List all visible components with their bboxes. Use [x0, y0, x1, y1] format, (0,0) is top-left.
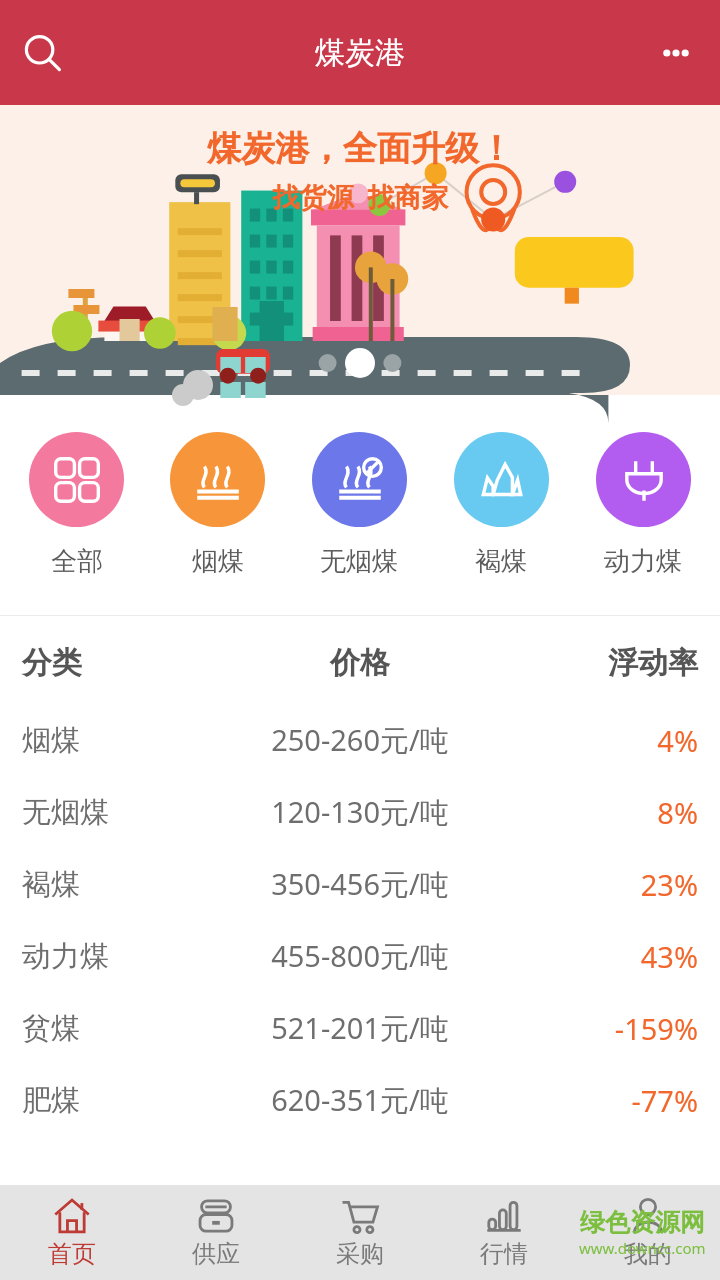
staticText: 肥煤	[22, 1082, 210, 1119]
staticText: 煤炭港	[315, 34, 405, 72]
staticText: 250-260元/吨	[210, 720, 510, 760]
button[interactable]: 贫煤	[22, 992, 698, 1064]
staticText: 褐煤	[475, 545, 527, 578]
staticText: 动力煤	[22, 938, 210, 975]
staticText: 521-201元/吨	[210, 1008, 510, 1048]
button[interactable]: 全部	[6, 395, 147, 615]
button[interactable]: 行情	[432, 1185, 576, 1280]
button[interactable]: 烟煤	[147, 395, 288, 615]
staticText: 120-130元/吨	[210, 792, 510, 832]
staticText: 供应	[192, 1239, 240, 1269]
staticText: 350-456元/吨	[210, 864, 510, 904]
button[interactable]: 我的	[576, 1185, 720, 1280]
staticText: 620-351元/吨	[210, 1080, 510, 1120]
staticText: 首页	[48, 1239, 96, 1269]
staticText: 浮动率	[510, 644, 698, 682]
staticText: 烟煤	[22, 722, 210, 759]
staticText: 绿色资源网	[580, 1207, 705, 1238]
button[interactable]: 无烟煤	[288, 395, 430, 615]
staticText: www.downcc.com	[579, 1238, 706, 1258]
staticText: 分类	[22, 644, 210, 682]
button[interactable]: More options	[644, 21, 708, 85]
button[interactable]: 褐煤	[430, 395, 572, 615]
staticText: 褐煤	[22, 866, 210, 903]
staticText: -159%	[510, 1009, 698, 1048]
staticText: 23%	[510, 865, 698, 904]
button[interactable]: 烟煤	[22, 704, 698, 776]
staticText: 找货源 找商家	[272, 178, 449, 215]
staticText: 4%	[510, 721, 698, 760]
button[interactable]: 供应	[144, 1185, 288, 1280]
staticText: 贫煤	[22, 1010, 210, 1047]
staticText: -77%	[510, 1081, 698, 1120]
button[interactable]: 动力煤	[22, 920, 698, 992]
button[interactable]: 采购	[288, 1185, 432, 1280]
staticText: 无烟煤	[320, 545, 398, 578]
button[interactable]: 肥煤	[22, 1064, 698, 1136]
staticText: 全部	[51, 545, 103, 578]
button[interactable]: 无烟煤	[22, 776, 698, 848]
button[interactable]: 动力煤	[572, 395, 714, 615]
staticText: 动力煤	[604, 545, 682, 578]
staticText: 烟煤	[192, 545, 244, 578]
staticText: 455-800元/吨	[210, 936, 510, 976]
staticText: 我的	[624, 1239, 672, 1269]
staticText: 无烟煤	[22, 794, 210, 831]
button[interactable]: 首页	[0, 1185, 144, 1280]
staticText: 行情	[480, 1239, 528, 1269]
staticText: 43%	[510, 937, 698, 976]
staticText: 8%	[510, 793, 698, 832]
button[interactable]: Search	[10, 21, 74, 85]
staticText: 价格	[210, 644, 510, 682]
staticText: 煤炭港，全面升级！	[207, 127, 513, 170]
staticText: 采购	[336, 1239, 384, 1269]
button[interactable]: 煤炭港，全面升级！	[0, 105, 720, 395]
button[interactable]: 褐煤	[22, 848, 698, 920]
